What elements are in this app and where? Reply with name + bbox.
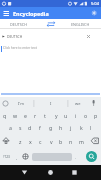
button[interactable] [0,134,14,148]
button[interactable]: b [56,134,66,148]
button[interactable]: m [76,134,86,148]
button[interactable]: f [35,121,45,134]
staticText: y [55,112,58,119]
staticText: o [84,112,88,119]
staticText: h [59,124,63,131]
staticText: we [75,101,81,106]
staticText: k [80,124,83,131]
button[interactable]: z [15,134,25,148]
button[interactable] [86,34,91,39]
button[interactable] [22,153,29,160]
button[interactable]: y [51,109,61,121]
staticText: b [59,138,63,145]
button[interactable]: g [46,121,56,134]
staticText: u [64,112,68,119]
staticText: v [50,138,53,145]
button[interactable] [33,165,67,180]
button[interactable]: q [0,109,10,121]
button[interactable]: I'm [13,97,29,109]
staticText: 5:04 [91,1,99,6]
button[interactable]: n [66,134,76,148]
button[interactable]: u [61,109,71,121]
button[interactable]: c [35,134,45,148]
staticText: , [16,155,18,160]
button[interactable]: r [30,109,40,121]
button[interactable]: a [5,121,15,134]
staticText: l [90,124,92,131]
staticText: t [44,112,46,119]
button[interactable]: i [71,109,81,121]
button[interactable]: v [46,134,56,148]
button[interactable]: we [70,97,86,109]
staticText: p [94,112,98,119]
button[interactable]: o [81,109,91,121]
staticText: DEUTSCH [10,22,28,27]
staticText: j [70,124,72,131]
staticText: q [3,112,7,119]
button[interactable]: j [66,121,76,134]
staticText: n [69,138,73,145]
button[interactable] [45,19,57,29]
staticText: a [9,124,12,131]
staticText: g [49,124,53,131]
button[interactable] [67,165,101,180]
button[interactable] [87,134,101,148]
button[interactable] [0,165,33,180]
button[interactable]: DEUTSCH [10,19,28,29]
staticText: Encyclopedia [13,10,49,17]
staticText: i [75,112,77,119]
button[interactable]: h [56,121,66,134]
staticText: c [39,138,42,145]
staticText: ?123 [3,155,10,159]
staticText: r [34,112,37,119]
button[interactable]: Encyclopedia [13,7,49,19]
staticText: ENGLISCH [71,22,90,27]
staticText: m [79,138,84,145]
button[interactable]: ENGLISCH [71,19,90,29]
button[interactable]: e [20,109,30,121]
staticText: s [19,124,22,131]
button[interactable]: . [73,151,79,163]
button[interactable]: I [43,97,59,109]
button[interactable]: l [86,121,96,134]
button[interactable]: DEUTSCH [2,34,23,39]
staticText: z [19,138,22,145]
staticText: I [50,101,52,106]
button[interactable]: w [10,109,20,121]
button[interactable] [86,151,97,162]
button[interactable]: s [15,121,25,134]
staticText: d [28,124,32,131]
button[interactable]: p [91,109,101,121]
staticText: w [13,112,18,119]
button[interactable]: d [25,121,35,134]
staticText: DEUTSCH [7,34,23,39]
staticText: Click here to enter text [3,46,37,50]
staticText: e [24,112,27,119]
button[interactable]: x [25,134,35,148]
staticText: I'm [18,101,24,106]
staticText: . [75,155,77,160]
button[interactable]: t [40,109,50,121]
button[interactable]: ?123 [0,148,13,165]
staticText: x [29,138,32,145]
button[interactable]: , [14,151,20,163]
staticText: f [39,124,41,131]
button[interactable]: k [76,121,86,134]
